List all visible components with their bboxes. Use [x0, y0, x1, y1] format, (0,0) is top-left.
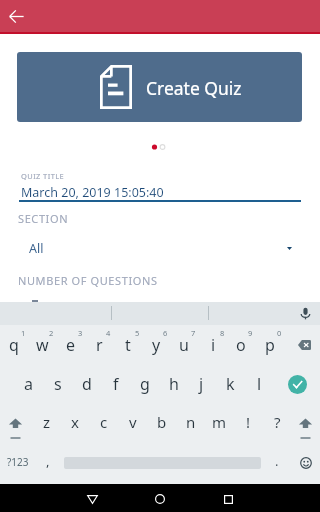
button[interactable]: ! — [234, 403, 263, 441]
staticText: n — [186, 412, 196, 432]
staticText: QUIZ TITLE — [21, 171, 65, 181]
button[interactable]: All — [0, 236, 320, 260]
button[interactable]: Enter — [279, 365, 315, 403]
staticText: y — [152, 334, 161, 356]
button[interactable]: n — [176, 403, 205, 441]
button[interactable]: 4 — [85, 325, 113, 365]
staticText: a — [24, 373, 33, 395]
button[interactable]: Back — [4, 4, 28, 28]
button[interactable] — [62, 441, 262, 481]
button[interactable]: s — [43, 365, 72, 403]
staticText: ! — [246, 412, 251, 432]
staticText: m — [212, 412, 227, 432]
button[interactable]: x — [60, 403, 89, 441]
staticText: t — [125, 334, 131, 356]
staticText: NUMBER OF QUESTIONS — [18, 273, 158, 288]
staticText: z — [43, 412, 51, 432]
button[interactable]: c — [89, 403, 118, 441]
staticText: d — [82, 373, 92, 395]
button[interactable]: z — [32, 403, 61, 441]
staticText: 6 — [163, 328, 168, 338]
staticText: 0 — [277, 328, 282, 338]
staticText: l — [257, 373, 262, 395]
staticText: g — [140, 373, 150, 395]
button[interactable]: Voice input — [293, 302, 317, 325]
button[interactable]: 3 — [57, 325, 85, 365]
button[interactable]: ? — [263, 403, 292, 441]
staticText: s — [54, 373, 62, 395]
staticText: ? — [274, 412, 281, 432]
staticText: ?123 — [7, 455, 29, 469]
staticText: j — [199, 373, 204, 395]
staticText: 2 — [49, 328, 54, 338]
staticText: b — [157, 412, 167, 432]
staticText: March 20, 2019 15:05:40 — [21, 184, 164, 201]
button[interactable]: k — [216, 365, 245, 403]
staticText: r — [96, 334, 103, 356]
button[interactable]: Create Quiz — [17, 52, 302, 122]
button[interactable]: f — [101, 365, 130, 403]
button[interactable]: 6 — [142, 325, 170, 365]
staticText: c — [100, 412, 108, 432]
staticText: 7 — [191, 328, 196, 338]
button[interactable]: 5 — [114, 325, 142, 365]
button[interactable]: j — [187, 365, 216, 403]
button[interactable]: h — [159, 365, 188, 403]
button[interactable]: a — [14, 365, 43, 403]
button[interactable]: Back — [69, 485, 115, 512]
staticText: f — [113, 373, 119, 395]
staticText: o — [236, 334, 246, 356]
button[interactable]: b — [147, 403, 176, 441]
button[interactable]: 8 — [199, 325, 227, 365]
button[interactable]: , — [33, 441, 62, 481]
staticText: 3 — [78, 328, 83, 338]
button[interactable]: d — [72, 365, 101, 403]
staticText: u — [179, 334, 189, 356]
button[interactable]: . — [262, 441, 291, 481]
staticText: 9 — [248, 328, 253, 338]
staticText: p — [265, 334, 275, 356]
button[interactable]: Shift — [1, 403, 30, 441]
staticText: k — [226, 373, 235, 395]
button[interactable]: ?123 — [0, 442, 36, 482]
staticText: i — [211, 334, 216, 356]
button[interactable]: 2 — [28, 325, 56, 365]
staticText: w — [36, 334, 49, 356]
staticText: , — [46, 452, 50, 470]
staticText: 1 — [21, 328, 26, 338]
button[interactable]: m — [205, 403, 234, 441]
staticText: SECTION — [18, 211, 69, 226]
staticText: . — [275, 452, 279, 470]
staticText: x — [71, 412, 79, 432]
staticText: All — [29, 240, 44, 257]
button[interactable]: Shift — [291, 403, 320, 441]
button[interactable]: Emoji — [290, 443, 320, 483]
button[interactable]: Recents — [205, 485, 251, 512]
button[interactable]: Backspace — [286, 325, 320, 365]
button[interactable]: v — [118, 403, 147, 441]
button[interactable]: 7 — [170, 325, 198, 365]
staticText: Create Quiz — [146, 76, 242, 100]
staticText: 4 — [106, 328, 111, 338]
staticText: 5 — [135, 328, 140, 338]
staticText: 8 — [220, 328, 225, 338]
button[interactable]: 9 — [227, 325, 255, 365]
button[interactable]: g — [130, 365, 159, 403]
button[interactable]: l — [245, 365, 274, 403]
staticText: e — [66, 334, 76, 356]
staticText: h — [169, 373, 179, 395]
button[interactable]: 0 — [256, 325, 284, 365]
button[interactable]: Home — [137, 485, 183, 512]
button[interactable]: 1 — [0, 325, 28, 365]
staticText: q — [9, 334, 19, 356]
staticText: v — [129, 412, 137, 432]
